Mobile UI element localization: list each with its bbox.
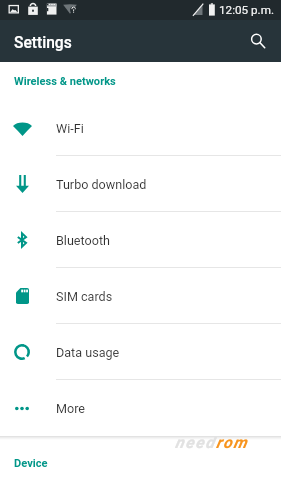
button[interactable]: SIM cards (0, 268, 281, 324)
staticText: Settings (14, 34, 72, 52)
button[interactable]: Wi-Fi (0, 100, 281, 156)
staticText: 12:05 p.m. (219, 3, 274, 17)
staticText: Bluetooth (56, 233, 110, 248)
staticText: Data usage (56, 345, 120, 360)
staticText: Wi-Fi (56, 121, 84, 136)
staticText: need (175, 433, 216, 452)
button[interactable]: More (0, 380, 281, 436)
button[interactable]: Turbo download (0, 156, 281, 212)
staticText: Turbo download (56, 177, 147, 192)
staticText: More (56, 401, 86, 416)
staticText: Device (14, 457, 48, 470)
button[interactable]: Search (243, 26, 273, 56)
button[interactable]: Bluetooth (0, 212, 281, 268)
staticText: rom (216, 433, 249, 452)
staticText: Wireless & networks (14, 75, 116, 88)
staticText: SIM cards (56, 289, 113, 304)
button[interactable]: Data usage (0, 324, 281, 380)
